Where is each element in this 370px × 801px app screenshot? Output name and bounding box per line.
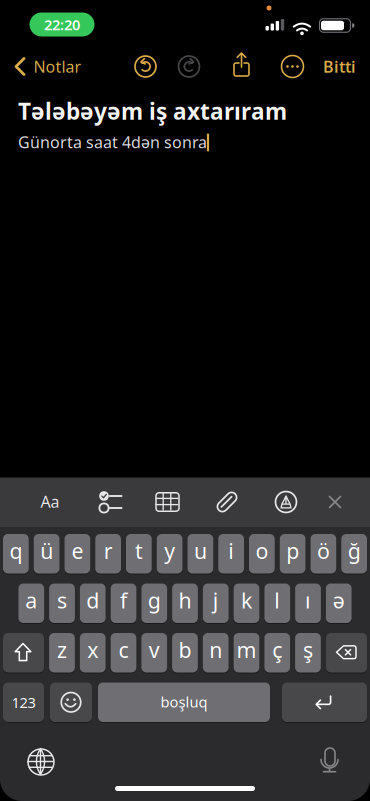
- button[interactable]: a: [18, 583, 44, 623]
- button[interactable]: Dismiss keyboard: [328, 495, 341, 508]
- button[interactable]: Notlar: [6, 56, 81, 77]
- button[interactable]: ü: [34, 534, 60, 573]
- button[interactable]: c: [111, 633, 136, 672]
- button[interactable]: r: [95, 534, 121, 573]
- staticText: k: [241, 586, 252, 614]
- button[interactable]: Redo: [178, 55, 200, 77]
- button[interactable]: Dictation: [318, 746, 342, 776]
- staticText: ə: [333, 586, 345, 614]
- button[interactable]: Return to call: [29, 12, 94, 36]
- staticText: p: [286, 537, 299, 565]
- staticText: b: [178, 636, 191, 664]
- button[interactable]: h: [172, 583, 198, 623]
- button[interactable]: s: [49, 583, 75, 623]
- button[interactable]: i: [218, 534, 244, 573]
- button[interactable]: Markup: [275, 491, 296, 512]
- button[interactable]: m: [234, 633, 259, 672]
- button[interactable]: d: [80, 583, 106, 623]
- staticText: r: [104, 537, 113, 565]
- button[interactable]: g: [141, 583, 167, 623]
- button[interactable]: Next keyboard: [27, 748, 54, 775]
- staticText: m: [236, 636, 256, 664]
- button[interactable]: Table: [156, 492, 179, 511]
- staticText: u: [194, 537, 207, 565]
- button[interactable]: Bitti: [323, 56, 356, 77]
- button[interactable]: Numbers: [3, 682, 44, 722]
- staticText: n: [209, 636, 222, 664]
- button[interactable]: ş: [295, 633, 321, 672]
- staticText: z: [57, 636, 67, 664]
- button[interactable]: More: [281, 55, 303, 77]
- button[interactable]: ı: [295, 583, 321, 623]
- button[interactable]: Delete: [326, 633, 367, 672]
- button[interactable]: q: [3, 534, 29, 573]
- button[interactable]: u: [187, 534, 213, 573]
- staticText: c: [118, 636, 128, 664]
- button[interactable]: Shift: [3, 633, 44, 672]
- button[interactable]: y: [157, 534, 183, 573]
- button[interactable]: boşluq: [98, 682, 270, 722]
- staticText: i: [228, 537, 234, 565]
- staticText: ğ: [348, 537, 361, 565]
- button[interactable]: l: [264, 583, 290, 623]
- staticText: 123: [11, 692, 35, 712]
- button[interactable]: j: [203, 583, 229, 623]
- button[interactable]: p: [280, 534, 306, 573]
- button[interactable]: Attach: [215, 490, 239, 514]
- staticText: o: [255, 537, 268, 565]
- staticText: ö: [317, 537, 330, 565]
- button[interactable]: ö: [310, 534, 336, 573]
- staticText: g: [148, 586, 161, 614]
- staticText: q: [9, 537, 22, 565]
- button[interactable]: x: [80, 633, 106, 672]
- button[interactable]: Return: [282, 682, 367, 722]
- staticText: Aa: [40, 491, 59, 512]
- staticText: ü: [40, 537, 53, 565]
- staticText: boşluq: [160, 692, 207, 711]
- button[interactable]: e: [64, 534, 90, 573]
- button[interactable]: Formatting: [40, 491, 59, 512]
- staticText: j: [213, 586, 219, 614]
- staticText: Bitti: [323, 56, 356, 77]
- staticText: y: [164, 537, 175, 565]
- button[interactable]: n: [203, 633, 229, 672]
- staticText: e: [71, 537, 83, 565]
- staticText: s: [57, 586, 67, 614]
- staticText: a: [25, 586, 37, 614]
- button[interactable]: f: [111, 583, 136, 623]
- staticText: Günorta saat 4dən sonra: [18, 131, 207, 153]
- staticText: Notlar: [33, 56, 81, 77]
- button[interactable]: z: [49, 633, 75, 672]
- button[interactable]: t: [126, 534, 152, 573]
- staticText: 22:20: [44, 15, 80, 34]
- button[interactable]: b: [172, 633, 198, 672]
- button[interactable]: ə: [326, 583, 352, 623]
- button[interactable]: Undo: [134, 55, 156, 77]
- button[interactable]: o: [249, 534, 275, 573]
- staticText: v: [149, 636, 160, 664]
- staticText: ı: [305, 586, 311, 614]
- staticText: d: [86, 586, 99, 614]
- button[interactable]: Share: [231, 51, 253, 77]
- staticText: x: [87, 636, 98, 664]
- staticText: ç: [272, 636, 282, 664]
- staticText: Tələbəyəm iş axtarıram: [18, 96, 287, 126]
- button[interactable]: v: [141, 633, 167, 672]
- staticText: t: [135, 537, 143, 565]
- staticText: h: [178, 586, 191, 614]
- button[interactable]: ğ: [341, 534, 367, 573]
- button[interactable]: k: [234, 583, 259, 623]
- button[interactable]: Checklist: [98, 490, 121, 513]
- staticText: f: [120, 586, 127, 614]
- staticText: l: [274, 586, 280, 614]
- staticText: ş: [303, 636, 313, 664]
- button[interactable]: ç: [264, 633, 290, 672]
- button[interactable]: Emoji: [50, 682, 92, 722]
